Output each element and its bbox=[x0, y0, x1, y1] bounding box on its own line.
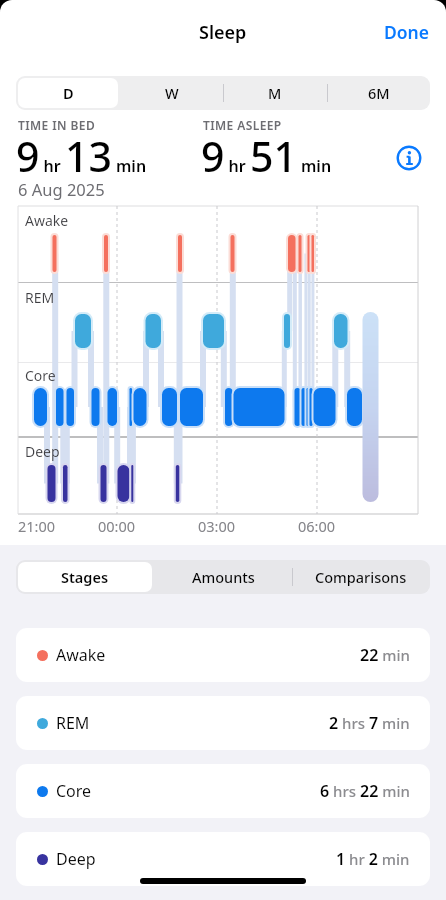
staticText: M bbox=[268, 83, 282, 103]
button[interactable]: Core bbox=[16, 764, 430, 818]
button[interactable]: Deep bbox=[16, 832, 430, 886]
staticText: 9 hr 51 min bbox=[201, 128, 332, 184]
button[interactable]: Stages bbox=[16, 560, 154, 594]
staticText: 6 hrs 22 min bbox=[320, 780, 410, 802]
button[interactable]: M bbox=[223, 76, 327, 110]
staticText: Deep bbox=[25, 442, 60, 461]
button[interactable]: D bbox=[16, 76, 120, 110]
staticText: Deep bbox=[56, 848, 96, 870]
staticText: 9 hr 13 min bbox=[16, 128, 147, 184]
staticText: Awake bbox=[25, 211, 69, 230]
staticText: 21:00 bbox=[18, 516, 56, 536]
staticText: REM bbox=[56, 712, 90, 734]
staticText: Sleep bbox=[199, 20, 247, 45]
button[interactable]: Awake bbox=[16, 628, 430, 682]
staticText: Stages bbox=[61, 567, 109, 587]
button[interactable]: Amounts bbox=[154, 560, 292, 594]
staticText: 6 Aug 2025 bbox=[18, 178, 105, 200]
button[interactable]: W bbox=[120, 76, 224, 110]
button[interactable]: REM bbox=[16, 696, 430, 750]
staticText: Comparisons bbox=[315, 567, 407, 587]
button[interactable] bbox=[396, 145, 422, 171]
staticText: 03:00 bbox=[198, 516, 236, 536]
staticText: Done bbox=[384, 20, 430, 44]
button[interactable]: 6M bbox=[327, 76, 430, 110]
staticText: Awake bbox=[56, 644, 106, 666]
staticText: D bbox=[63, 83, 74, 103]
staticText: 2 hrs 7 min bbox=[329, 712, 410, 734]
staticText: 00:00 bbox=[98, 516, 136, 536]
staticText: TIME IN BED bbox=[18, 117, 96, 133]
button[interactable]: Done bbox=[384, 20, 430, 44]
staticText: REM bbox=[25, 288, 55, 307]
button[interactable]: Comparisons bbox=[292, 560, 430, 594]
staticText: 1 hr 2 min bbox=[336, 848, 410, 870]
staticText: TIME ASLEEP bbox=[203, 117, 282, 133]
staticText: 22 min bbox=[360, 644, 410, 666]
staticText: Core bbox=[56, 780, 92, 802]
staticText: W bbox=[165, 83, 179, 103]
staticText: Core bbox=[25, 366, 56, 385]
staticText: 06:00 bbox=[298, 516, 336, 536]
staticText: Amounts bbox=[192, 567, 255, 587]
staticText: 6M bbox=[368, 83, 390, 103]
